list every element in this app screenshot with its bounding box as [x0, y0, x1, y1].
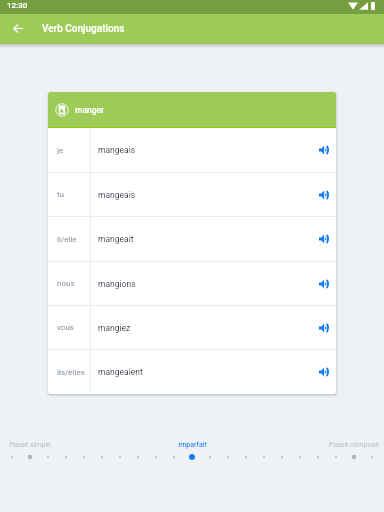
staticText: mangeais — [98, 190, 136, 200]
button[interactable]: Play pronunciation — [312, 128, 336, 172]
staticText: Passé composé — [329, 441, 379, 449]
staticText: mangions — [98, 279, 136, 289]
button[interactable]: Passé composé — [314, 441, 384, 449]
staticText: Imparfait — [178, 441, 207, 449]
staticText: ils/elles — [57, 368, 85, 377]
button[interactable]: Imparfait — [152, 441, 232, 449]
button[interactable]: Play pronunciation — [312, 217, 336, 261]
staticText: mangeaient — [98, 367, 143, 377]
button[interactable]: Back — [0, 14, 36, 44]
staticText: mangiez — [98, 323, 131, 333]
button[interactable]: vous — [48, 306, 336, 349]
button[interactable]: manger — [48, 92, 336, 128]
staticText: nous — [57, 279, 75, 288]
button[interactable]: Play pronunciation — [312, 350, 336, 394]
staticText: manger — [75, 105, 105, 115]
button[interactable]: Play pronunciation — [312, 306, 336, 349]
staticText: Verb Conjugations — [42, 23, 125, 35]
staticText: 12:30 — [7, 1, 28, 10]
staticText: mangeait — [98, 234, 134, 244]
staticText: vous — [57, 323, 74, 332]
staticText: Passé simple — [9, 441, 51, 449]
staticText: tu — [57, 190, 65, 199]
button[interactable]: Play pronunciation — [312, 173, 336, 216]
button[interactable]: Play pronunciation — [312, 262, 336, 305]
button[interactable]: il/elle — [48, 217, 336, 261]
button[interactable]: ils/elles — [48, 350, 336, 394]
button[interactable]: nous — [48, 262, 336, 305]
button[interactable]: je — [48, 128, 336, 172]
button[interactable]: Passé simple — [0, 441, 70, 449]
button[interactable]: tu — [48, 173, 336, 216]
staticText: il/elle — [57, 235, 77, 244]
staticText: je — [57, 146, 64, 155]
staticText: mangeais — [98, 145, 136, 155]
